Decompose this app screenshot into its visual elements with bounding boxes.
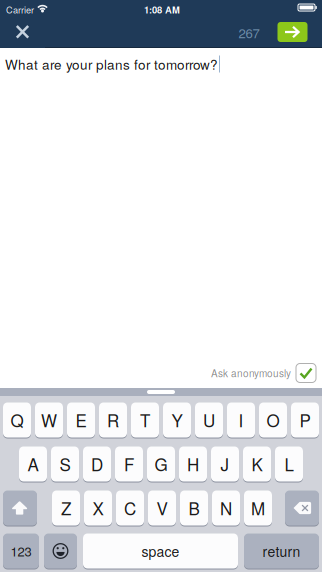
button[interactable]: Send: [277, 22, 307, 42]
staticText: 1:08 AM: [144, 3, 180, 16]
button[interactable]: return: [244, 533, 319, 569]
staticText: S: [59, 452, 70, 476]
staticText: space: [141, 541, 179, 561]
button[interactable]: Ask anonymously: [89, 363, 316, 383]
staticText: W: [41, 408, 57, 432]
staticText: V: [156, 496, 167, 520]
button[interactable]: U: [195, 402, 223, 438]
button[interactable]: E: [67, 402, 95, 438]
button[interactable]: space: [83, 533, 238, 569]
staticText: 267: [238, 23, 259, 42]
staticText: F: [124, 452, 134, 476]
staticText: A: [27, 452, 38, 476]
staticText: Ask anonymously: [211, 366, 291, 380]
button[interactable]: I: [227, 402, 255, 438]
button[interactable]: Delete: [285, 490, 319, 526]
button[interactable]: C: [116, 490, 144, 526]
button[interactable]: G: [147, 446, 175, 482]
button[interactable]: O: [259, 402, 287, 438]
button[interactable]: W: [35, 402, 63, 438]
staticText: X: [92, 496, 103, 520]
staticText: Y: [171, 408, 182, 432]
staticText: L: [284, 452, 293, 476]
staticText: 123: [10, 542, 31, 560]
button[interactable]: X: [84, 490, 112, 526]
button[interactable]: N: [212, 490, 240, 526]
staticText: B: [188, 496, 199, 520]
button[interactable]: T: [131, 402, 159, 438]
button[interactable]: K: [243, 446, 271, 482]
button[interactable]: Q: [3, 402, 31, 438]
staticText: D: [91, 452, 103, 476]
button[interactable]: V: [148, 490, 176, 526]
button[interactable]: Shift: [3, 490, 37, 526]
button[interactable]: D: [83, 446, 111, 482]
button[interactable]: F: [115, 446, 143, 482]
button[interactable]: B: [180, 490, 208, 526]
staticText: Carrier: [6, 3, 34, 16]
staticText: R: [107, 408, 119, 432]
staticText: H: [187, 452, 199, 476]
button[interactable]: Y: [163, 402, 191, 438]
button[interactable]: P: [291, 402, 319, 438]
staticText: G: [154, 452, 167, 476]
button[interactable]: L: [275, 446, 303, 482]
staticText: Z: [61, 496, 71, 520]
staticText: O: [266, 408, 279, 432]
staticText: T: [140, 408, 150, 432]
staticText: M: [251, 496, 265, 520]
staticText: U: [203, 408, 215, 432]
button[interactable]: Z: [52, 490, 80, 526]
staticText: I: [238, 408, 243, 432]
staticText: J: [220, 452, 229, 476]
button[interactable]: J: [211, 446, 239, 482]
button[interactable]: H: [179, 446, 207, 482]
staticText: What are your plans for tomorrow?: [5, 54, 218, 74]
button[interactable]: Emoji: [44, 533, 77, 569]
button[interactable]: M: [244, 490, 272, 526]
staticText: P: [299, 408, 310, 432]
staticText: Q: [10, 408, 23, 432]
staticText: C: [124, 496, 136, 520]
staticText: K: [251, 452, 262, 476]
button[interactable]: Close: [0, 16, 45, 48]
staticText: return: [262, 541, 300, 561]
button[interactable]: S: [51, 446, 79, 482]
button[interactable]: A: [19, 446, 47, 482]
staticText: N: [220, 496, 232, 520]
button[interactable]: R: [99, 402, 127, 438]
staticText: E: [75, 408, 86, 432]
button[interactable]: 123: [3, 533, 39, 569]
